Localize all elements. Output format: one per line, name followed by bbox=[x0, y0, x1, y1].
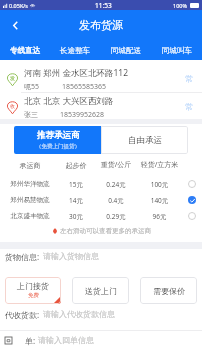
staticText: 11:53 bbox=[95, 1, 112, 10]
staticText: 30元 bbox=[57, 212, 95, 221]
staticText: 常 bbox=[185, 74, 194, 85]
staticText: 上门接货 bbox=[17, 281, 49, 291]
staticText: 0.4元 bbox=[95, 196, 137, 205]
staticText: 需要保价 bbox=[153, 286, 185, 296]
staticText: 河南 郑州 金水区北环路112 bbox=[24, 67, 129, 79]
staticText: 同城叫车 bbox=[162, 46, 192, 55]
staticText: 同城配送 bbox=[111, 46, 141, 55]
staticText: 呃55 bbox=[24, 82, 40, 91]
button[interactable]: 代收货款: bbox=[0, 307, 202, 321]
staticText: 推荐承运商 bbox=[37, 130, 80, 141]
staticText: 18565585365 bbox=[62, 82, 107, 91]
staticText: 郑州华洋物流 bbox=[3, 180, 57, 188]
button[interactable]: 郑州华洋物流 bbox=[0, 176, 202, 192]
staticText: 张三 bbox=[24, 110, 38, 119]
staticText: 发 bbox=[10, 75, 15, 81]
staticText: 请输入回单信息 bbox=[38, 335, 94, 345]
staticText: 免费 bbox=[28, 292, 39, 299]
button[interactable]: 北京盛丰物流 bbox=[0, 208, 202, 224]
staticText: 100元 bbox=[137, 180, 182, 189]
staticText: 请输入代收货款信息 bbox=[43, 309, 115, 319]
staticText: 0.24元 bbox=[95, 180, 137, 189]
staticText: 单: bbox=[25, 335, 36, 346]
staticText: 左右滑动可以查看更多的承运商 bbox=[60, 227, 151, 235]
button[interactable]: 发 bbox=[0, 67, 202, 91]
button[interactable]: 送货上门 bbox=[72, 277, 129, 304]
staticText: 货物信息: bbox=[5, 251, 40, 262]
button[interactable]: 货物信息: bbox=[0, 249, 202, 263]
staticText: 送货上门 bbox=[85, 286, 117, 296]
button[interactable]: 同城叫车 bbox=[151, 40, 202, 60]
button[interactable]: 同城配送 bbox=[100, 40, 151, 60]
staticText: 承运商 bbox=[3, 161, 57, 170]
button[interactable]: 郑州易慧物流 bbox=[0, 192, 202, 208]
staticText: 96元 bbox=[137, 212, 182, 221]
staticText: 郑州易慧物流 bbox=[3, 196, 57, 204]
button[interactable]: Back bbox=[0, 10, 30, 40]
staticText: 100% bbox=[173, 2, 188, 9]
staticText: 长途整车 bbox=[60, 46, 90, 55]
staticText: 重货/公斤 bbox=[95, 160, 137, 170]
staticText: （免费上门提货） bbox=[36, 143, 80, 150]
staticText: 请输入货物信息 bbox=[43, 251, 99, 261]
staticText: 北京 北京 大兴区西刘路 bbox=[24, 95, 114, 107]
staticText: 代收货款: bbox=[5, 309, 40, 320]
staticText: 常 bbox=[185, 102, 194, 113]
staticText: 北京盛丰物流 bbox=[3, 212, 57, 220]
staticText: 起步价 bbox=[57, 161, 95, 170]
staticText: 轻货/立方米 bbox=[137, 160, 182, 170]
button[interactable]: 需要保价 bbox=[140, 277, 197, 304]
button[interactable]: 长途整车 bbox=[50, 40, 100, 60]
staticText: 0.05K/s bbox=[9, 2, 28, 9]
staticText: 收 bbox=[10, 103, 15, 109]
button[interactable]: 上门接货 bbox=[5, 277, 61, 304]
button[interactable]: 专线直达 bbox=[0, 40, 50, 60]
staticText: 18539952628 bbox=[60, 110, 105, 119]
staticText: 0.29元 bbox=[95, 212, 137, 221]
staticText: 专线直达 bbox=[10, 46, 40, 55]
button[interactable]: 单: bbox=[0, 331, 202, 349]
staticText: 14元 bbox=[57, 196, 95, 205]
staticText: 140元 bbox=[137, 196, 182, 205]
staticText: 15元 bbox=[57, 180, 95, 189]
staticText: 发布货源 bbox=[79, 18, 123, 32]
staticText: 自由承运 bbox=[128, 135, 162, 146]
button[interactable]: 自由承运 bbox=[101, 126, 188, 154]
button[interactable]: 收 bbox=[0, 95, 202, 119]
button[interactable]: 推荐承运商 bbox=[14, 126, 101, 154]
